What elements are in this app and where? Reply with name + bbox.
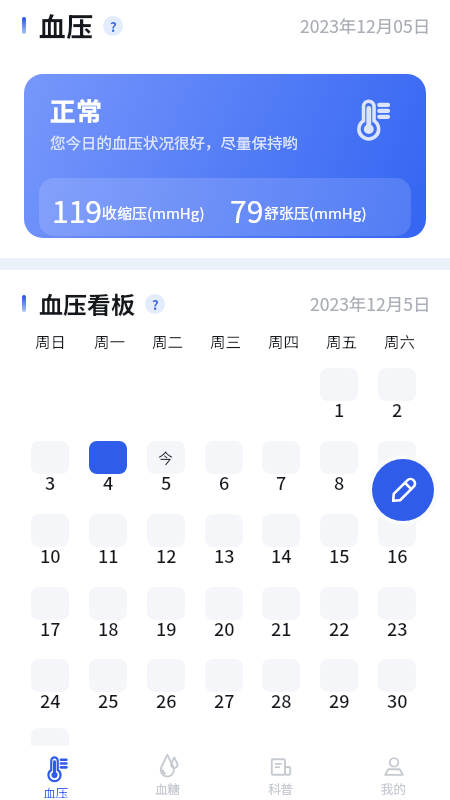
button[interactable]: 7 (262, 441, 300, 500)
staticText: ? (110, 17, 117, 36)
staticText: 19 (156, 615, 177, 641)
button[interactable]: 13 (205, 514, 243, 573)
staticText: 血糖 (155, 779, 181, 797)
staticText: 17 (40, 615, 61, 641)
button[interactable]: 27 (205, 659, 243, 718)
staticText: 周五 (326, 330, 358, 352)
staticText: 今 (158, 447, 174, 469)
button[interactable]: 21 (262, 587, 300, 646)
staticText: 119 (52, 188, 102, 231)
button[interactable]: Help (145, 294, 165, 314)
button[interactable]: 12 (147, 514, 185, 573)
button[interactable]: 科普 (224, 756, 337, 800)
staticText: 14 (271, 542, 292, 568)
button[interactable]: 29 (320, 659, 358, 718)
staticText: 16 (387, 542, 408, 568)
button[interactable]: 11 (89, 514, 127, 573)
staticText: 周三 (210, 330, 242, 352)
staticText: 周二 (152, 330, 184, 352)
button[interactable]: 4 (89, 441, 127, 500)
staticText: 20 (214, 615, 235, 641)
staticText: 您今日的血压状况很好，尽量保持哟 (50, 131, 299, 153)
staticText: 31 (40, 756, 61, 782)
staticText: 15 (329, 542, 350, 568)
button[interactable]: 6 (205, 441, 243, 500)
button[interactable]: 正常 (24, 74, 426, 238)
button[interactable]: Help (103, 16, 123, 36)
staticText: 13 (214, 542, 235, 568)
staticText: 28 (271, 687, 292, 713)
staticText: ? (152, 295, 159, 314)
staticText: 22 (329, 615, 350, 641)
button[interactable]: 8 (320, 441, 358, 500)
staticText: 舒张压(mmHg) (264, 202, 367, 224)
staticText: 5 (161, 469, 172, 495)
staticText: 正常 (50, 91, 103, 129)
staticText: 23 (387, 615, 408, 641)
staticText: 收缩压(mmHg) (102, 202, 205, 224)
staticText: 27 (214, 687, 235, 713)
staticText: 30 (387, 687, 408, 713)
staticText: 我的 (381, 779, 407, 797)
button[interactable]: 18 (89, 587, 127, 646)
button[interactable]: 3 (31, 441, 69, 500)
staticText: 7 (276, 469, 287, 495)
staticText: 2023年12月05日 (300, 13, 431, 38)
staticText: 3 (45, 469, 56, 495)
staticText: 科普 (268, 779, 294, 797)
staticText: 12 (156, 542, 177, 568)
staticText: 21 (271, 615, 292, 641)
button[interactable]: 14 (262, 514, 300, 573)
button[interactable]: 10 (31, 514, 69, 573)
button[interactable]: 今 (147, 441, 185, 500)
button[interactable]: 19 (147, 587, 185, 646)
staticText: 24 (40, 687, 61, 713)
staticText: 周日 (35, 330, 67, 352)
button[interactable]: 16 (378, 514, 416, 573)
button[interactable]: Add record (372, 459, 434, 521)
button[interactable]: 20 (205, 587, 243, 646)
button[interactable]: 9 (378, 441, 416, 500)
button[interactable]: 15 (320, 514, 358, 573)
staticText: 周四 (268, 330, 300, 352)
button[interactable]: 24 (31, 659, 69, 718)
staticText: 8 (334, 469, 345, 495)
staticText: 25 (98, 687, 119, 713)
staticText: 18 (98, 615, 119, 641)
button[interactable]: 我的 (337, 756, 450, 800)
button[interactable]: 23 (378, 587, 416, 646)
staticText: 10 (40, 542, 61, 568)
button[interactable]: 28 (262, 659, 300, 718)
staticText: 血压 (39, 6, 93, 45)
staticText: 周六 (384, 330, 416, 352)
staticText: 2023年12月5日 (310, 291, 431, 316)
staticText: 血压看板 (39, 286, 135, 321)
staticText: 26 (156, 687, 177, 713)
button[interactable]: 血压 (0, 756, 112, 800)
button[interactable]: 1 (320, 368, 358, 427)
staticText: 6 (219, 469, 230, 495)
button[interactable]: 22 (320, 587, 358, 646)
button[interactable]: 17 (31, 587, 69, 646)
staticText: 4 (103, 469, 114, 495)
button[interactable]: 25 (89, 659, 127, 718)
staticText: 9 (392, 469, 403, 495)
button[interactable]: 血糖 (112, 756, 224, 800)
button[interactable]: 31 (31, 728, 69, 787)
staticText: 1 (334, 396, 345, 422)
staticText: 2 (392, 396, 403, 422)
staticText: 79 (230, 188, 264, 231)
button[interactable]: 2 (378, 368, 416, 427)
staticText: 血压 (43, 783, 69, 798)
button[interactable]: 30 (378, 659, 416, 718)
staticText: 周一 (94, 330, 126, 352)
staticText: 29 (329, 687, 350, 713)
button[interactable]: 26 (147, 659, 185, 718)
staticText: 11 (98, 542, 119, 568)
